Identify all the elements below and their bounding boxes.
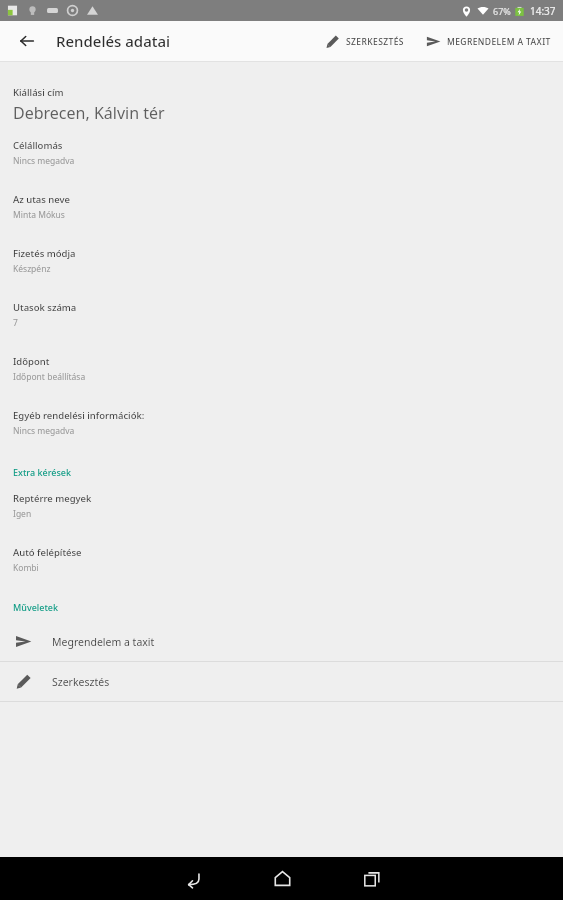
staticText: 14:37 (530, 4, 556, 18)
staticText: 67% (493, 5, 511, 17)
staticText: Időpont (13, 355, 50, 368)
staticText: Extra kérések (13, 466, 72, 478)
staticText: Szerkesztés (52, 675, 110, 689)
staticText: Minta Mókus (13, 209, 65, 221)
staticText: Egyéb rendelési információk: (13, 409, 145, 422)
button[interactable]: Recent apps (343, 857, 401, 900)
staticText: Debrecen, Kálvin tér (13, 102, 165, 124)
staticText: Nincs megadva (13, 155, 75, 167)
button[interactable]: MEGRENDELEM A TAXIT (418, 26, 563, 57)
button[interactable]: Szerkesztés (0, 662, 563, 701)
staticText: Kiállási cím (13, 86, 64, 99)
button[interactable]: SZERKESZTÉS (317, 26, 412, 57)
button[interactable]: Megrendelem a taxit (0, 622, 563, 661)
staticText: Műveletek (13, 601, 59, 613)
staticText: Autó felépítése (13, 546, 82, 559)
staticText: Célállomás (13, 139, 63, 152)
button[interactable]: Back (163, 857, 221, 900)
staticText: Készpénz (13, 263, 51, 275)
staticText: Fizetés módja (13, 247, 76, 260)
button[interactable]: Back (12, 26, 42, 56)
staticText: SZERKESZTÉS (346, 36, 404, 48)
staticText: Megrendelem a taxit (52, 635, 155, 649)
button[interactable]: Home (253, 857, 311, 900)
staticText: Időpont beállítása (13, 371, 86, 383)
staticText: MEGRENDELEM A TAXIT (447, 36, 551, 48)
staticText: Utasok száma (13, 301, 77, 314)
staticText: Az utas neve (13, 193, 71, 206)
staticText: 7 (13, 317, 18, 329)
staticText: Nincs megadva (13, 425, 75, 437)
staticText: Reptérre megyek (13, 492, 92, 505)
staticText: Kombi (13, 562, 39, 574)
staticText: Rendelés adatai (56, 31, 171, 51)
staticText: Igen (13, 508, 32, 520)
